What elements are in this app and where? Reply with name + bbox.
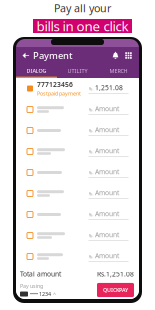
staticText: Rs. xyxy=(88,191,93,196)
button[interactable]: MERCH xyxy=(98,64,139,78)
button[interactable]: Rs. xyxy=(16,183,139,204)
button[interactable]: UTILITY xyxy=(57,64,98,78)
staticText: UTILITY xyxy=(67,67,87,75)
staticText: Postpaid payment xyxy=(37,90,81,97)
staticText: Rs.1,251.08 xyxy=(97,270,134,278)
staticText: Amount xyxy=(95,209,119,218)
staticText: Rs. xyxy=(88,128,93,133)
staticText: Amount xyxy=(95,251,119,260)
staticText: Pay using xyxy=(20,282,43,289)
button[interactable]: Rs. xyxy=(16,162,139,183)
staticText: Rs. xyxy=(88,170,93,175)
staticText: Payment xyxy=(33,49,73,62)
staticText: Amount xyxy=(95,167,119,176)
staticText: DIALOG xyxy=(26,67,46,74)
staticText: Pay all your xyxy=(54,1,111,15)
staticText: •••• 1234 xyxy=(30,290,51,298)
staticText: MERCH xyxy=(109,67,127,75)
staticText: Rs. xyxy=(88,86,93,91)
staticText: Rs. xyxy=(88,254,93,259)
button[interactable]: Rs. xyxy=(16,120,139,141)
button[interactable]: Rs. xyxy=(16,225,139,246)
staticText: Amount xyxy=(95,230,119,239)
staticText: ^ xyxy=(53,290,56,298)
button[interactable]: 777123456 xyxy=(16,78,139,99)
staticText: bills in one click xyxy=(36,17,128,35)
button[interactable]: Rs. xyxy=(16,99,139,120)
button[interactable]: Rs. xyxy=(16,204,139,225)
staticText: Rs. xyxy=(88,149,93,154)
button[interactable]: Notifications xyxy=(109,47,122,63)
button[interactable]: Back xyxy=(19,47,33,63)
staticText: Total amount xyxy=(20,270,61,278)
staticText: QUICKPAY xyxy=(103,286,128,294)
staticText: 1,251.08 xyxy=(95,83,123,92)
staticText: Rs. xyxy=(88,107,93,112)
staticText: Amount xyxy=(95,146,119,155)
staticText: 777123456 xyxy=(37,80,73,89)
staticText: Amount xyxy=(95,125,119,134)
button[interactable]: Rs. xyxy=(16,141,139,162)
staticText: Rs. xyxy=(88,233,93,238)
button[interactable]: DIALOG xyxy=(16,64,57,78)
button[interactable]: QUICKPAY xyxy=(97,283,134,297)
staticText: Amount xyxy=(95,188,119,197)
staticText: Rs. xyxy=(88,212,93,217)
staticText: Amount xyxy=(95,104,119,113)
button[interactable]: Apps xyxy=(122,47,135,63)
button[interactable]: Rs. xyxy=(16,246,139,267)
